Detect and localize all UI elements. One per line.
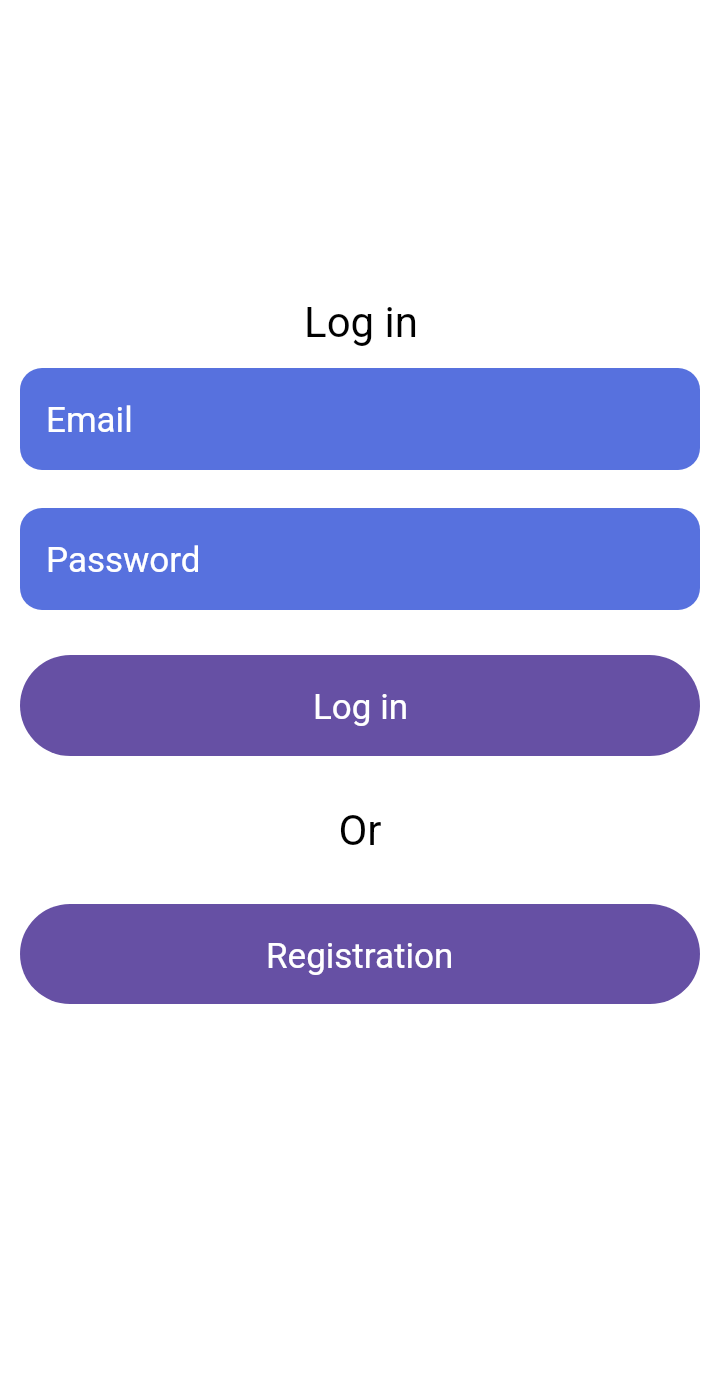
- button[interactable]: Log in: [20, 655, 700, 756]
- staticText: Email: [46, 400, 133, 441]
- button[interactable]: Password: [20, 508, 700, 610]
- staticText: Log in: [1, 298, 720, 347]
- staticText: Registration: [266, 936, 454, 977]
- staticText: Log in: [313, 687, 408, 728]
- button[interactable]: Registration: [20, 904, 700, 1004]
- staticText: Or: [0, 806, 720, 855]
- staticText: Password: [46, 540, 201, 581]
- button[interactable]: Email: [20, 368, 700, 470]
